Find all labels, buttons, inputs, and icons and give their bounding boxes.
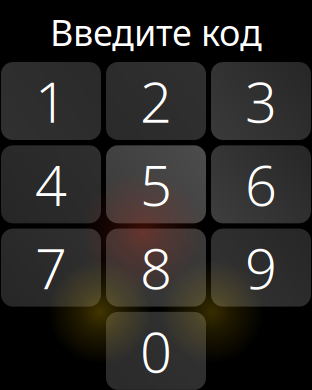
button[interactable]: 5 <box>106 145 206 223</box>
staticText: 6 <box>245 147 277 221</box>
staticText: Введите код <box>50 8 262 56</box>
staticText: 7 <box>35 230 67 305</box>
button[interactable]: 7 <box>1 229 101 307</box>
button[interactable]: 0 <box>106 312 206 390</box>
staticText: 5 <box>140 147 172 221</box>
button[interactable]: 1 <box>1 62 101 140</box>
button[interactable]: 2 <box>106 62 206 140</box>
button[interactable]: 9 <box>211 229 311 307</box>
staticText: 4 <box>35 147 67 221</box>
button[interactable]: 8 <box>106 229 206 307</box>
button[interactable]: 6 <box>211 145 311 223</box>
button[interactable]: 3 <box>211 62 311 140</box>
staticText: 1 <box>35 64 67 138</box>
staticText: 0 <box>140 314 172 388</box>
staticText: 3 <box>245 64 277 138</box>
staticText: 9 <box>245 230 277 305</box>
staticText: 2 <box>140 64 172 138</box>
staticText: 8 <box>140 230 172 305</box>
button[interactable]: 4 <box>1 145 101 223</box>
